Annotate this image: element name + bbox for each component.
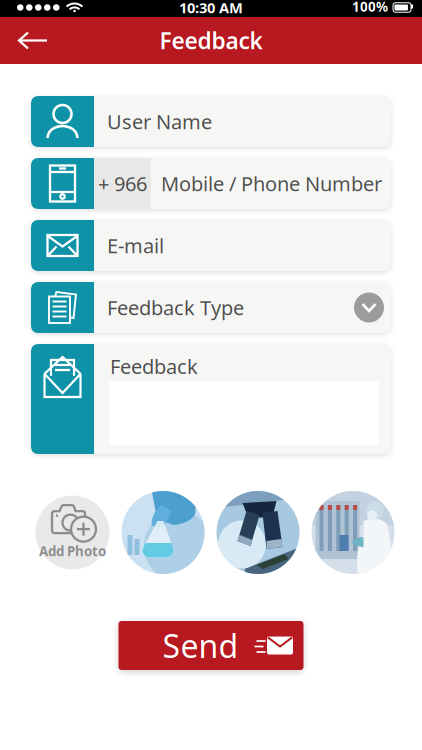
staticText: E-mail (107, 232, 164, 259)
staticText: Feedback Type (107, 294, 244, 321)
staticText: + 966 (98, 170, 147, 197)
staticText: Add Photo (39, 542, 106, 560)
button[interactable]: E-mail (31, 220, 391, 271)
staticText: User Name (107, 108, 212, 135)
button[interactable]: Feedback (31, 344, 391, 454)
staticText: Mobile / Phone Number (161, 170, 382, 197)
button[interactable]: + 966 (31, 158, 391, 209)
button[interactable] (121, 491, 204, 574)
button[interactable]: Feedback Type (31, 282, 391, 333)
button[interactable] (0, 20, 47, 60)
staticText: Send (162, 624, 238, 667)
staticText: 100% (352, 0, 388, 15)
staticText: Feedback (110, 353, 198, 380)
button[interactable] (311, 491, 394, 574)
staticText: 10:30 AM (179, 0, 243, 17)
staticText: Feedback (159, 25, 262, 55)
button[interactable]: User Name (31, 96, 391, 147)
button[interactable] (216, 491, 299, 574)
button[interactable]: Send (118, 621, 303, 670)
button[interactable]: Add Photo (35, 495, 109, 569)
